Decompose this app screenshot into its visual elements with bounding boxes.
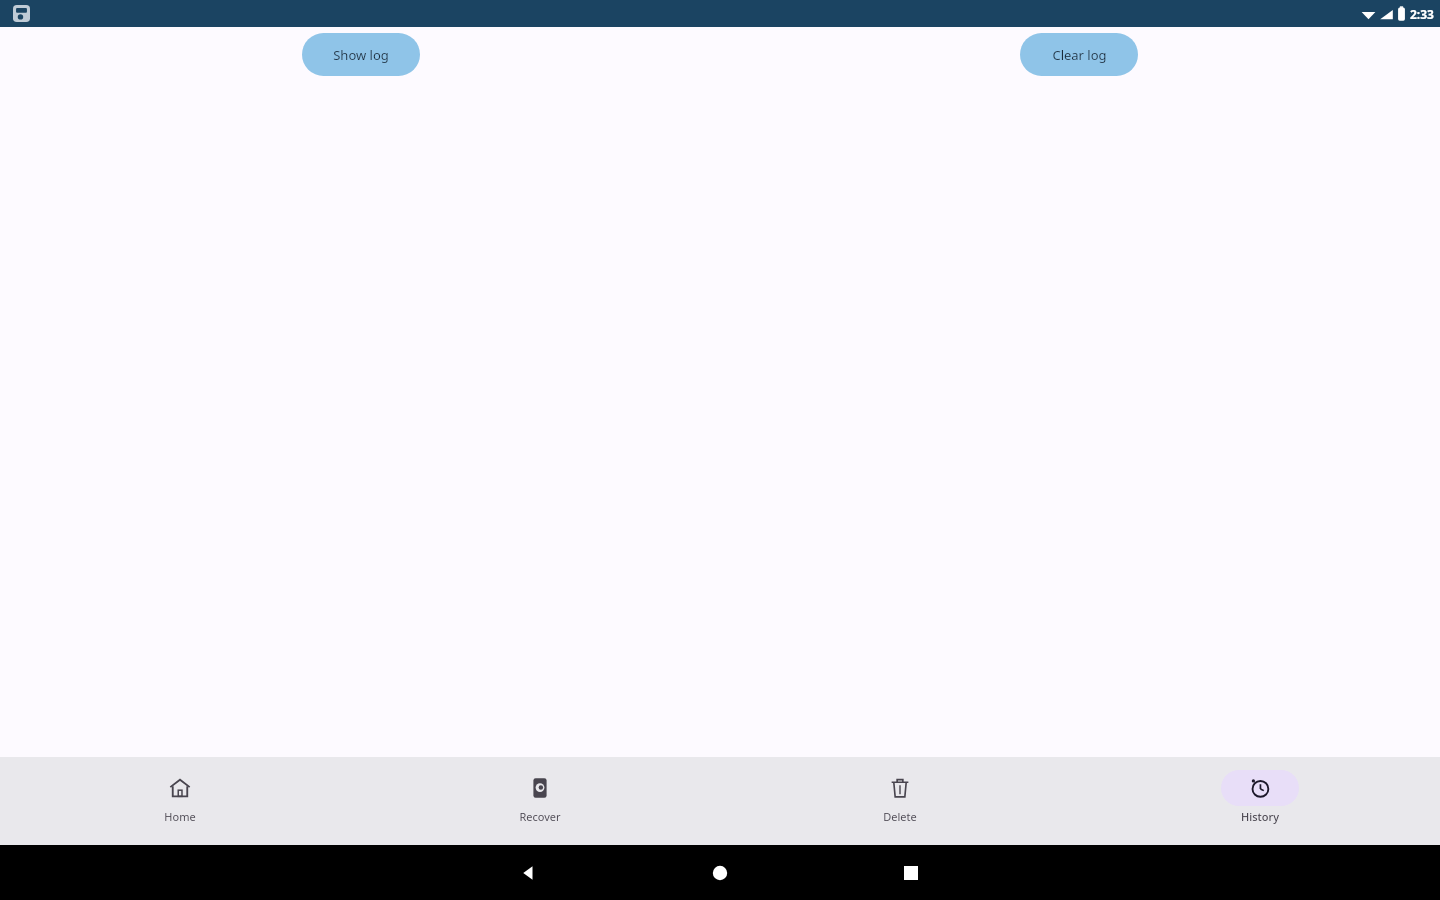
staticText: Delete [883,809,917,824]
button[interactable]: Home [0,757,360,845]
staticText: Show log [333,46,389,64]
button[interactable]: Recent apps [887,849,935,897]
button[interactable]: Back [505,849,553,897]
staticText: 2:33 [1410,6,1434,22]
button[interactable]: Clear log [1020,33,1138,76]
button[interactable]: Home [696,849,744,897]
staticText: Home [164,809,196,824]
staticText: Clear log [1052,46,1107,64]
button[interactable]: History [1080,757,1440,845]
staticText: Recover [519,809,561,824]
button[interactable]: Delete [720,757,1080,845]
staticText: History [1241,809,1279,824]
button[interactable]: Recover [360,757,720,845]
button[interactable]: Show log [302,33,420,76]
